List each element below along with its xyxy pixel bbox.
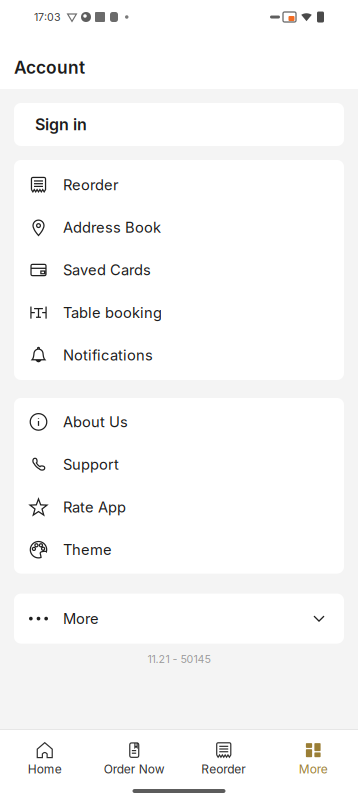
staticText: Account (14, 57, 85, 78)
staticText: Notifications (63, 346, 153, 364)
staticText: Order Now (104, 762, 165, 776)
button[interactable]: Sign in (14, 103, 344, 146)
button[interactable]: More (14, 594, 344, 644)
button[interactable]: About Us (14, 401, 344, 443)
staticText: Table booking (63, 304, 162, 321)
button[interactable]: Order Now (89, 730, 179, 781)
staticText: Rate App (63, 498, 126, 516)
staticText: Reorder (201, 762, 246, 776)
staticText: Theme (63, 541, 112, 558)
button[interactable]: Rate App (14, 486, 344, 528)
staticText: Address Book (63, 218, 161, 236)
staticText: More (63, 610, 99, 627)
button[interactable]: Reorder (14, 163, 344, 206)
button[interactable]: Support (14, 443, 344, 486)
staticText: Sign in (35, 115, 87, 134)
staticText: About Us (63, 413, 128, 431)
button[interactable]: Theme (14, 528, 344, 571)
button[interactable]: Address Book (14, 206, 344, 249)
button[interactable]: Saved Cards (14, 249, 344, 291)
staticText: Reorder (63, 176, 119, 194)
button[interactable]: More (268, 730, 358, 781)
staticText: More (299, 762, 328, 776)
staticText: 11.21 - 50145 (147, 653, 210, 665)
button[interactable]: Home (0, 730, 89, 781)
staticText: Support (63, 456, 119, 473)
button[interactable]: Reorder (179, 730, 268, 781)
button[interactable]: Notifications (14, 334, 344, 376)
button[interactable]: Table booking (14, 291, 344, 334)
staticText: Saved Cards (63, 261, 151, 279)
staticText: 17:03 (34, 10, 61, 23)
staticText: Home (28, 762, 62, 776)
